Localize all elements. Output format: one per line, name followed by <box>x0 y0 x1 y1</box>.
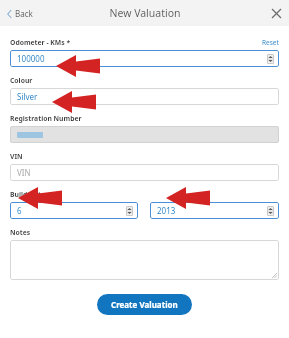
staticText: Reset <box>262 38 279 47</box>
button[interactable]: Back <box>0 4 40 23</box>
button[interactable]: Close <box>264 1 289 26</box>
other: Stepper <box>267 206 274 216</box>
staticText: Notes <box>10 228 31 237</box>
staticText: Build Date <box>10 190 46 199</box>
other: Stepper <box>126 206 133 216</box>
staticText: Registration Number <box>10 114 82 123</box>
staticText: 6 <box>17 205 22 216</box>
staticText: Odometer - KMs * <box>10 38 256 47</box>
staticText: New Valuation <box>109 6 181 20</box>
other: Stepper <box>267 54 274 64</box>
staticText: Silver <box>17 91 38 102</box>
button[interactable]: Silver <box>10 88 279 105</box>
staticText: Create Valuation <box>111 299 178 310</box>
button[interactable]: 2013 <box>150 202 279 219</box>
button[interactable]: VIN <box>10 164 279 181</box>
staticText: Back <box>15 8 33 19</box>
button[interactable]: Create Valuation <box>97 294 192 315</box>
button[interactable]: 100000 <box>10 50 279 67</box>
staticText: Colour <box>10 76 33 85</box>
staticText: 2013 <box>157 205 176 216</box>
button[interactable] <box>10 240 279 280</box>
button[interactable] <box>10 126 279 143</box>
button[interactable]: Reset <box>256 38 279 47</box>
staticText: 100000 <box>17 53 45 64</box>
staticText: VIN <box>17 167 31 178</box>
staticText: VIN <box>10 152 23 161</box>
button[interactable]: 6 <box>10 202 138 219</box>
